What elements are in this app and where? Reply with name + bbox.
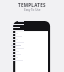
button[interactable] — [10, 50, 31, 53]
button[interactable] — [10, 26, 31, 29]
button[interactable] — [10, 38, 31, 41]
button[interactable] — [10, 41, 31, 44]
button[interactable] — [10, 20, 31, 22]
button[interactable] — [10, 32, 31, 35]
button[interactable] — [10, 53, 31, 56]
button[interactable] — [10, 59, 31, 62]
staticText: TEMPLATES — [18, 2, 46, 8]
button[interactable] — [10, 23, 31, 26]
button[interactable] — [10, 44, 31, 47]
button[interactable] — [10, 56, 31, 59]
button[interactable] — [10, 29, 31, 32]
button[interactable] — [10, 35, 31, 38]
staticText: Easy To Use — [24, 8, 41, 12]
button[interactable] — [10, 47, 31, 50]
